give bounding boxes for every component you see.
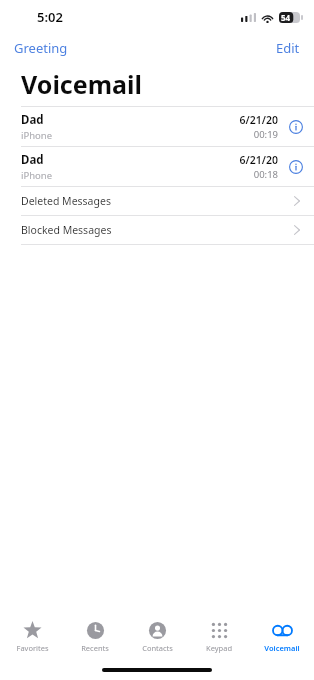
button[interactable]: Deleted Messages bbox=[0, 187, 314, 215]
staticText: 5:02 bbox=[37, 8, 63, 26]
button[interactable]: Blocked Messages bbox=[0, 216, 314, 244]
staticText: 6/21/20 bbox=[239, 113, 278, 127]
staticText: Recents bbox=[81, 643, 109, 653]
button[interactable]: Greeting bbox=[0, 35, 82, 61]
staticText: Voicemail bbox=[264, 643, 300, 653]
staticText: Favorites bbox=[16, 643, 49, 653]
button[interactable]: More info bbox=[285, 116, 307, 138]
staticText: Contacts bbox=[142, 643, 173, 653]
staticText: Blocked Messages bbox=[21, 223, 294, 237]
staticText: iPhone bbox=[21, 169, 53, 182]
button[interactable]: Keypad bbox=[189, 619, 249, 655]
staticText: Edit bbox=[276, 39, 300, 57]
staticText: 00:19 bbox=[253, 128, 278, 141]
button[interactable]: Dad bbox=[0, 147, 314, 186]
staticText: Greeting bbox=[14, 39, 68, 57]
staticText: 00:18 bbox=[253, 168, 278, 181]
staticText: 54 bbox=[281, 12, 291, 23]
staticText: Voicemail bbox=[21, 67, 142, 101]
button[interactable]: Dad bbox=[0, 107, 314, 146]
button[interactable]: Recents bbox=[65, 619, 125, 655]
staticText: Deleted Messages bbox=[21, 194, 294, 208]
button[interactable]: Edit bbox=[262, 35, 314, 61]
staticText: iPhone bbox=[21, 129, 53, 142]
staticText: 6/21/20 bbox=[239, 153, 278, 167]
button[interactable]: More info bbox=[285, 156, 307, 178]
staticText: Dad bbox=[21, 112, 44, 128]
staticText: Keypad bbox=[206, 643, 232, 653]
staticText: Dad bbox=[21, 152, 44, 168]
button[interactable]: Voicemail bbox=[252, 619, 312, 655]
button[interactable]: Favorites bbox=[2, 619, 62, 655]
button[interactable]: Contacts bbox=[127, 619, 187, 655]
